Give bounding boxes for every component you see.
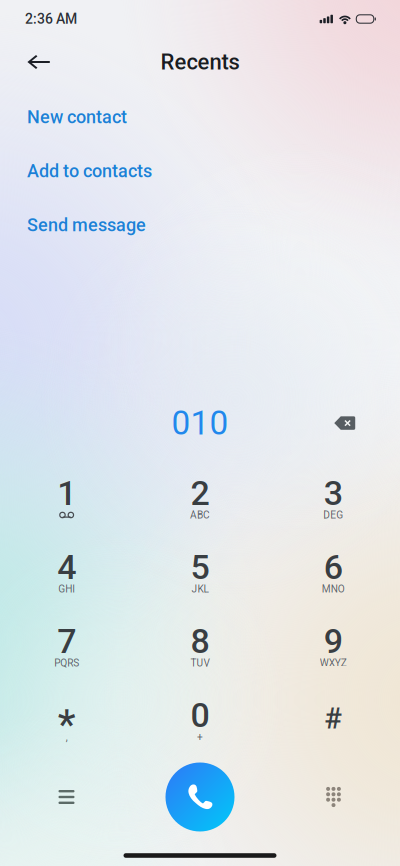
staticText: , — [66, 731, 68, 743]
button[interactable]: 1 — [0, 463, 133, 537]
staticText: GHI — [58, 583, 75, 595]
button[interactable]: # — [267, 685, 400, 759]
staticText: 1 — [57, 474, 76, 513]
staticText: PQRS — [54, 657, 79, 669]
staticText: ABC — [190, 509, 210, 521]
button[interactable]: 7 — [0, 611, 133, 685]
button[interactable]: 0 — [133, 685, 267, 759]
button[interactable]: 3 — [267, 463, 400, 537]
button[interactable]: Call — [133, 759, 267, 835]
staticText: * — [58, 701, 76, 748]
staticText: 9 — [324, 622, 343, 661]
button[interactable]: Back — [17, 42, 61, 82]
staticText: 2:36 AM — [25, 11, 77, 27]
staticText: + — [197, 731, 203, 743]
button[interactable]: 4 — [0, 537, 133, 611]
button[interactable]: Call log — [0, 759, 133, 835]
staticText: MNO — [322, 583, 345, 595]
staticText: 0 — [190, 696, 209, 735]
staticText: 4 — [57, 548, 76, 587]
button[interactable]: 8 — [133, 611, 267, 685]
button[interactable]: 6 — [267, 537, 400, 611]
staticText: Send message — [27, 214, 146, 236]
staticText: Add to contacts — [27, 160, 152, 182]
button[interactable]: New contact — [0, 90, 400, 144]
button[interactable]: 5 — [133, 537, 267, 611]
staticText: Recents — [160, 49, 239, 75]
staticText: 8 — [190, 622, 209, 661]
staticText: JKL — [191, 583, 208, 595]
button[interactable]: 2 — [133, 463, 267, 537]
staticText: TUV — [190, 657, 209, 669]
staticText: 5 — [190, 548, 209, 587]
button[interactable]: 9 — [267, 611, 400, 685]
staticText: # — [324, 701, 342, 736]
staticText: WXYZ — [320, 657, 347, 669]
staticText: 7 — [57, 622, 76, 661]
staticText: DEG — [323, 509, 343, 521]
staticText: New contact — [27, 106, 127, 128]
button[interactable]: Add to contacts — [0, 144, 400, 198]
button[interactable]: * — [0, 685, 133, 759]
staticText: 3 — [324, 474, 343, 513]
button[interactable]: Send message — [0, 198, 400, 252]
staticText: 6 — [324, 548, 343, 587]
button[interactable]: Keypad — [267, 759, 400, 835]
button[interactable]: Delete — [322, 402, 368, 444]
staticText: 2 — [190, 474, 209, 513]
staticText: 010 — [171, 403, 228, 443]
